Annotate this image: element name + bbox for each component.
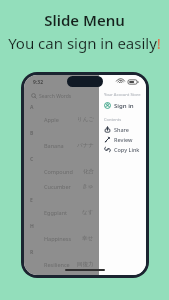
button[interactable]: Compound xyxy=(24,164,99,179)
staticText: Your Account Store xyxy=(104,92,141,97)
staticText: C xyxy=(30,156,34,163)
button[interactable]: Happiness xyxy=(24,231,99,246)
staticText: Contents xyxy=(104,117,122,122)
staticText: E xyxy=(30,197,33,204)
staticText: りんご xyxy=(77,116,94,123)
staticText: Sign in xyxy=(114,102,134,110)
staticText: きゅ xyxy=(82,183,94,190)
staticText: Copy Link xyxy=(114,146,140,153)
staticText: B xyxy=(30,130,34,137)
button[interactable]: Resilience xyxy=(24,257,99,272)
staticText: Happiness xyxy=(44,235,72,242)
staticText: Compound xyxy=(44,168,73,175)
staticText: Banana xyxy=(44,142,64,149)
staticText: 回復力 xyxy=(77,261,94,268)
button[interactable]: Sign in xyxy=(104,100,142,111)
staticText: H xyxy=(30,223,34,230)
staticText: A xyxy=(30,104,34,111)
staticText: 幸せ xyxy=(82,235,94,242)
staticText: You can sign in easily! xyxy=(8,33,161,53)
staticText: Search Words xyxy=(39,93,72,100)
button[interactable]: Banana xyxy=(24,138,99,153)
button[interactable]: Copy Link xyxy=(104,144,142,154)
staticText: バナナ xyxy=(77,142,94,149)
staticText: なす xyxy=(82,209,94,216)
button[interactable]: Apple xyxy=(24,112,99,127)
staticText: Cucumber xyxy=(44,183,71,190)
button[interactable]: Review xyxy=(104,134,142,144)
button[interactable]: Cucumber xyxy=(24,179,99,194)
staticText: 9:32 xyxy=(33,79,43,86)
staticText: R xyxy=(30,249,34,256)
other: Sign in xyxy=(104,102,111,109)
staticText: 化合 xyxy=(83,168,94,175)
staticText: Eggplant xyxy=(44,209,68,216)
button[interactable]: Search Words xyxy=(31,91,92,101)
staticText: Resilience xyxy=(44,261,70,268)
button[interactable]: Eggplant xyxy=(24,205,99,220)
staticText: Review xyxy=(114,136,133,143)
staticText: Slide Menu xyxy=(44,10,125,30)
staticText: Share xyxy=(114,126,129,133)
staticText: Apple xyxy=(44,116,59,123)
button[interactable]: Share xyxy=(104,124,142,134)
